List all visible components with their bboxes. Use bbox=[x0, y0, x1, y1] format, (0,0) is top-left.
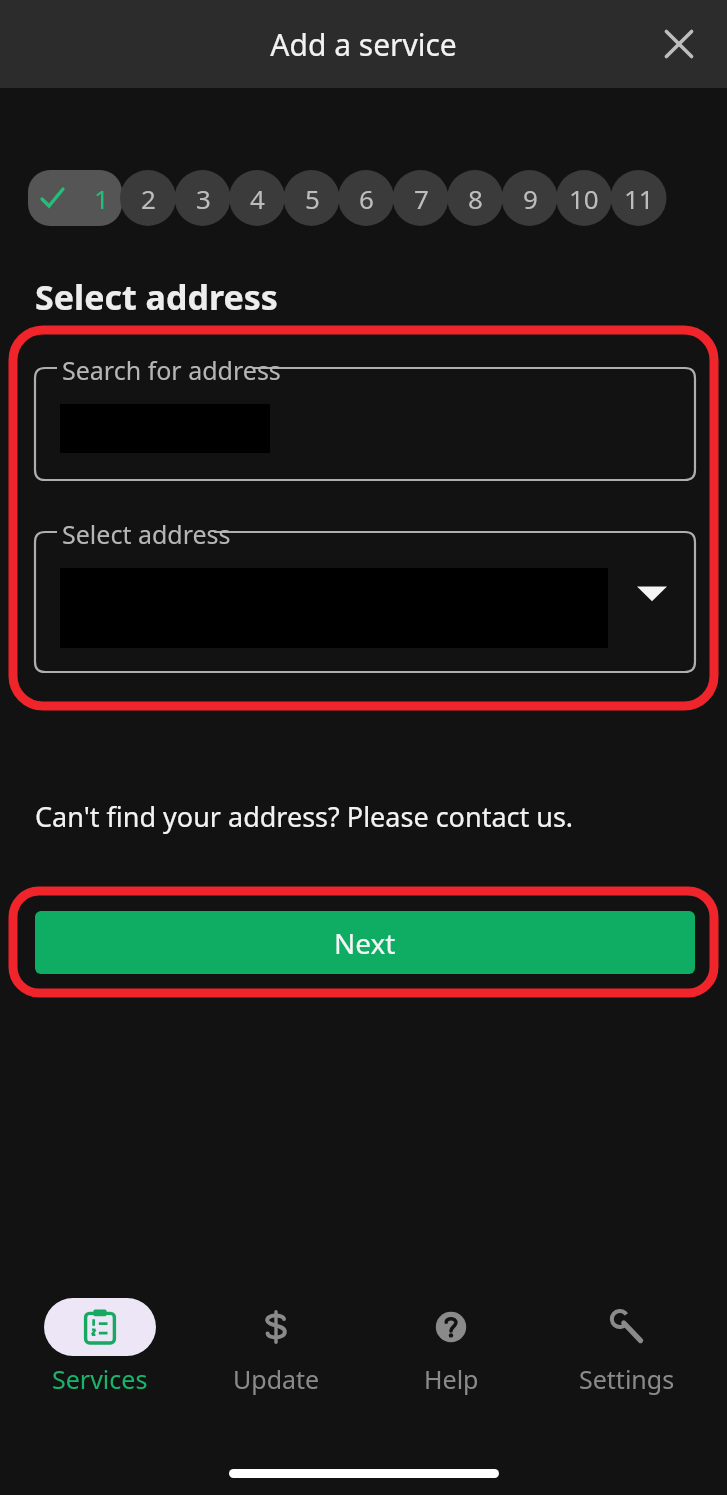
button[interactable]: Update bbox=[201, 1298, 351, 1396]
staticText: 5 bbox=[305, 181, 320, 216]
button[interactable]: 2 bbox=[120, 170, 176, 226]
staticText: 11 bbox=[624, 181, 654, 216]
staticText: Add a service bbox=[270, 24, 457, 65]
button[interactable]: Search for address bbox=[35, 368, 695, 480]
button[interactable]: 7 bbox=[393, 170, 449, 226]
button[interactable]: 4 bbox=[229, 170, 285, 226]
button[interactable]: 3 bbox=[175, 170, 231, 226]
staticText: Select address bbox=[62, 517, 231, 551]
button[interactable]: Help bbox=[376, 1298, 526, 1396]
staticText: 10 bbox=[569, 181, 599, 216]
button[interactable]: 6 bbox=[338, 170, 394, 226]
staticText: Next bbox=[334, 924, 396, 962]
staticText: 7 bbox=[414, 181, 429, 216]
button[interactable]: Services bbox=[25, 1298, 175, 1396]
staticText: 3 bbox=[196, 181, 211, 216]
button[interactable]: 11 bbox=[611, 170, 667, 226]
staticText: 9 bbox=[523, 181, 538, 216]
button[interactable]: 5 bbox=[284, 170, 340, 226]
button[interactable]: 10 bbox=[556, 170, 612, 226]
staticText: 6 bbox=[359, 181, 374, 216]
button[interactable]: Select address bbox=[35, 532, 695, 672]
staticText: 4 bbox=[250, 181, 265, 216]
staticText: Services bbox=[52, 1362, 148, 1396]
button[interactable]: Close bbox=[655, 20, 703, 68]
staticText: Help bbox=[424, 1362, 479, 1396]
staticText: Select address bbox=[35, 274, 278, 320]
staticText: 2 bbox=[141, 181, 156, 216]
button[interactable]: 9 bbox=[502, 170, 558, 226]
staticText: Update bbox=[233, 1362, 320, 1396]
button[interactable]: Can't find your address? Please contact … bbox=[35, 798, 574, 835]
button[interactable]: 8 bbox=[447, 170, 503, 226]
staticText: Search for address bbox=[62, 353, 281, 387]
button[interactable]: Next bbox=[35, 911, 695, 974]
button[interactable]: Settings bbox=[552, 1298, 702, 1396]
staticText: 8 bbox=[468, 181, 483, 216]
staticText: 1 bbox=[94, 181, 109, 216]
staticText: Settings bbox=[579, 1362, 675, 1396]
